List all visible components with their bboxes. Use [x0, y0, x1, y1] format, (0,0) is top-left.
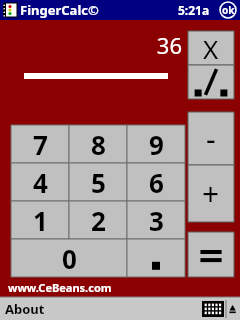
button[interactable]: Divide: [188, 65, 234, 99]
staticText: 7: [33, 127, 48, 162]
staticText: www.CeBeans.com: [8, 280, 112, 295]
staticText: 9: [149, 127, 164, 162]
button[interactable]: 3: [127, 201, 185, 239]
staticText: FingerCalc©: [20, 1, 99, 19]
staticText: 6: [149, 165, 164, 200]
button[interactable]: 1: [11, 201, 69, 239]
button[interactable]: 8: [69, 125, 127, 163]
button[interactable]: 2: [69, 201, 127, 239]
staticText: 2: [91, 203, 106, 238]
staticText: 5:21a: [178, 2, 210, 18]
button[interactable]: [127, 239, 185, 277]
staticText: About: [5, 300, 45, 318]
staticText: 36: [150, 30, 182, 60]
staticText: 4: [33, 165, 48, 200]
button[interactable]: OK: [219, 1, 237, 19]
staticText: +: [202, 173, 220, 214]
button[interactable]: -: [188, 112, 234, 165]
button[interactable]: About: [0, 297, 60, 320]
staticText: X: [203, 31, 219, 65]
button[interactable]: 5: [69, 163, 127, 201]
button[interactable]: X: [188, 31, 234, 65]
button[interactable]: Keyboard: [202, 301, 224, 317]
staticText: 8: [91, 127, 106, 162]
button[interactable]: 6: [127, 163, 185, 201]
staticText: 5: [91, 165, 106, 200]
staticText: -: [206, 118, 216, 159]
button[interactable]: 4: [11, 163, 69, 201]
staticText: 0: [62, 241, 77, 276]
button[interactable]: Equals: [188, 232, 234, 277]
button[interactable]: Show input panel: [226, 299, 238, 319]
staticText: ok: [222, 3, 235, 17]
button[interactable]: 7: [11, 125, 69, 163]
staticText: 1: [33, 203, 48, 238]
staticText: 3: [149, 203, 164, 238]
button[interactable]: 9: [127, 125, 185, 163]
button[interactable]: +: [188, 165, 234, 222]
button[interactable]: 0: [11, 239, 127, 277]
